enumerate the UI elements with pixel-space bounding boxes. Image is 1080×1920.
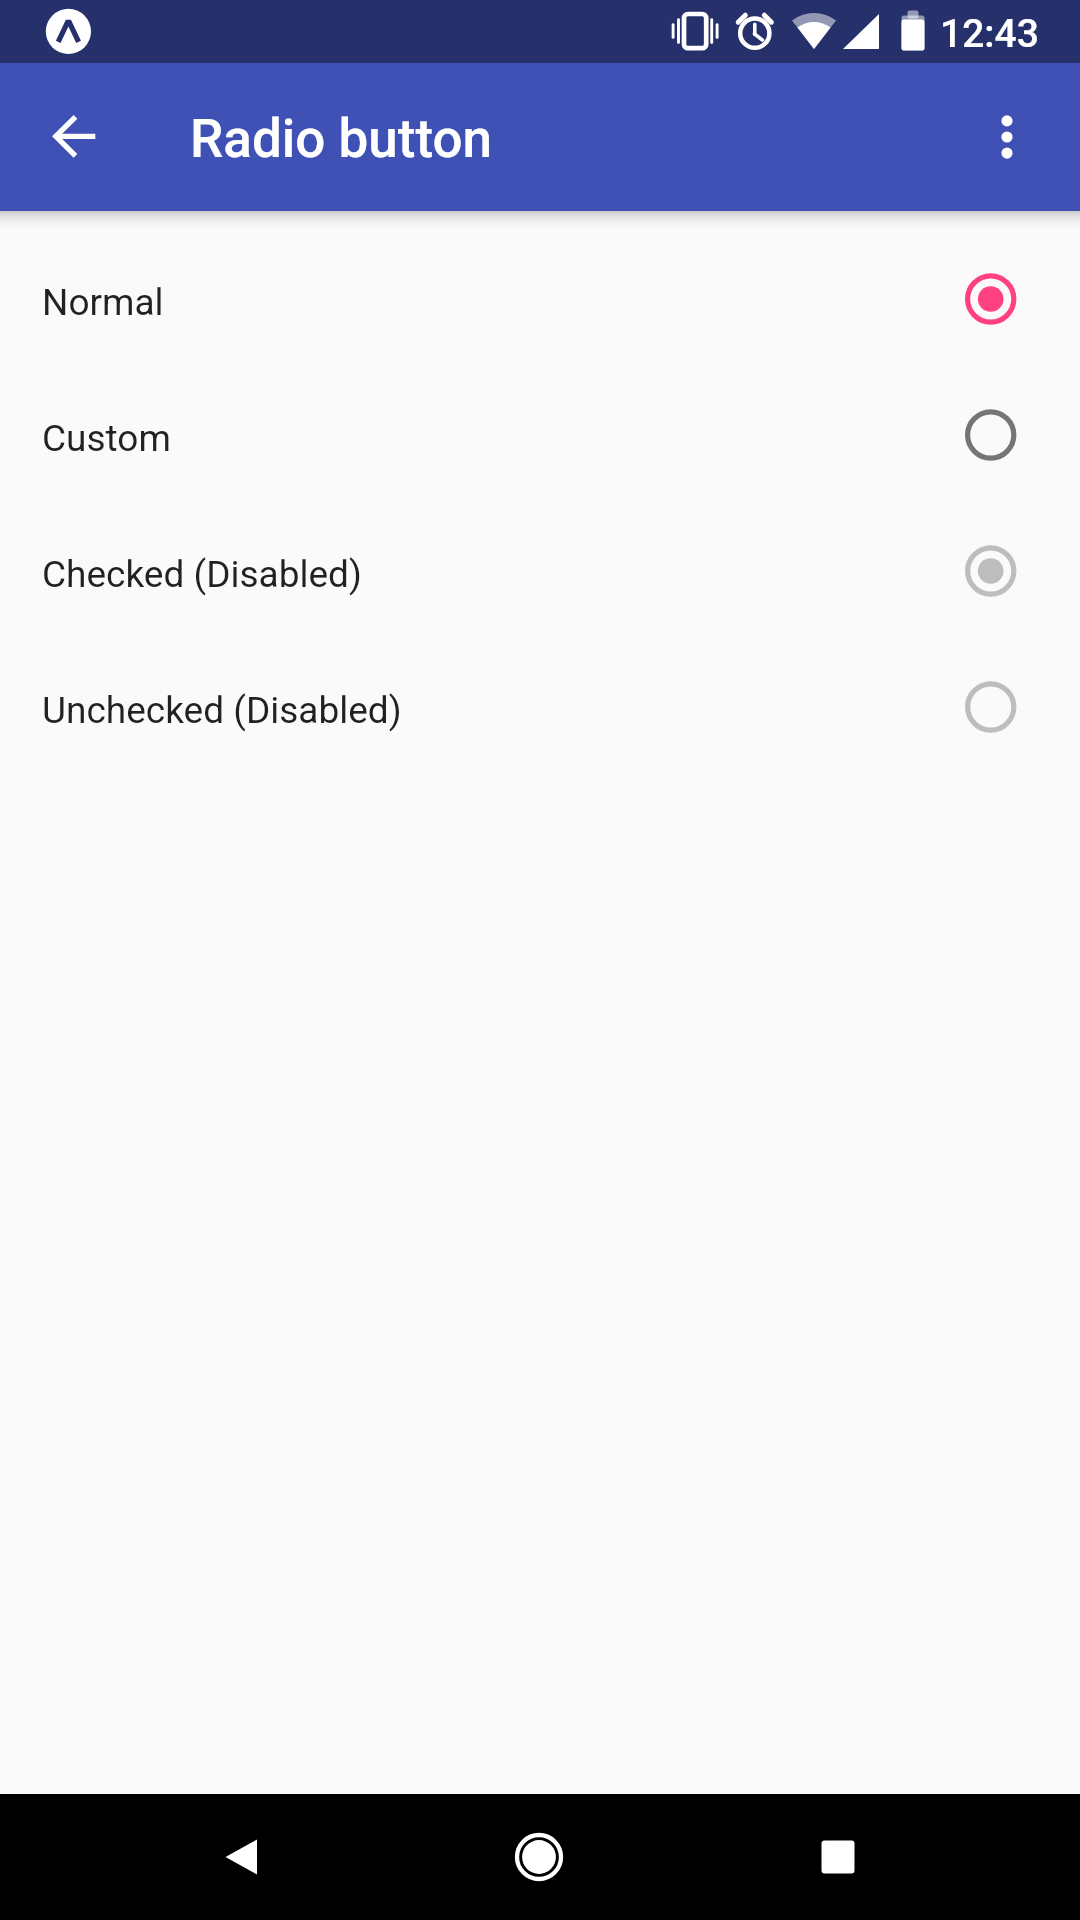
button[interactable]: Navigate up <box>17 77 137 197</box>
staticText: Checked (Disabled) <box>42 553 960 596</box>
staticText: Radio button <box>190 108 493 170</box>
staticText: Custom <box>42 417 960 460</box>
button[interactable]: Unchecked (Disabled) <box>0 639 1080 775</box>
button[interactable]: Back <box>181 1797 301 1917</box>
staticText: Unchecked (Disabled) <box>42 689 960 732</box>
staticText: 12:43 <box>940 11 1039 57</box>
button[interactable]: Custom <box>0 367 1080 503</box>
button[interactable]: Recent apps <box>778 1797 898 1917</box>
button[interactable]: Home <box>479 1797 599 1917</box>
button[interactable]: Normal <box>0 231 1080 367</box>
button[interactable]: Checked (Disabled) <box>0 503 1080 639</box>
staticText: Normal <box>42 281 960 324</box>
button[interactable]: More options <box>953 83 1061 191</box>
